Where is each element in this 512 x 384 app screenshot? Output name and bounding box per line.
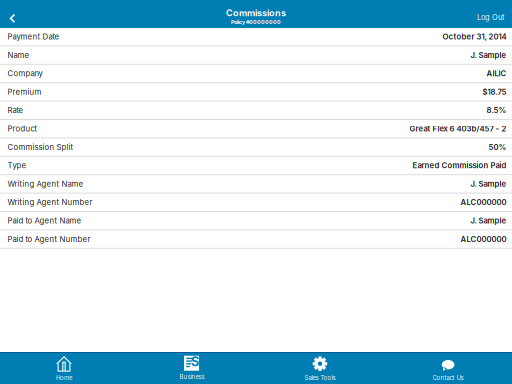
staticText: J. Sample — [470, 216, 506, 225]
staticText: Type — [7, 161, 26, 170]
staticText: October 31, 2014 — [442, 32, 506, 41]
staticText: ALC000000 — [460, 234, 506, 244]
staticText: Product — [7, 124, 37, 133]
staticText: 50% — [488, 142, 506, 152]
staticText: Premium — [7, 87, 41, 97]
staticText: S — [191, 354, 199, 369]
staticText: $18.75 — [482, 87, 506, 97]
staticText: J. Sample — [470, 179, 506, 189]
staticText: Paid to Agent Number — [7, 234, 90, 244]
staticText: Earned Commission Paid — [412, 161, 506, 170]
staticText: Paid to Agent Name — [7, 216, 81, 225]
staticText: Home — [56, 374, 72, 382]
staticText: Writing Agent Number — [7, 198, 92, 207]
staticText: Sales Tools — [304, 374, 335, 382]
staticText: AILIC — [486, 69, 506, 78]
button[interactable]: Sales Tools — [256, 352, 384, 384]
staticText: Contact Us — [432, 374, 463, 382]
staticText: Commissions — [226, 7, 286, 18]
button[interactable]: Home — [0, 352, 128, 384]
staticText: 8.5% — [486, 106, 506, 115]
button[interactable]: Contact Us — [384, 352, 512, 384]
staticText: Great Flex 6 403b/457 - 2 — [409, 124, 506, 133]
button[interactable]: Back — [0, 0, 24, 28]
staticText: Log Out — [477, 13, 504, 22]
staticText: Business — [179, 373, 204, 381]
staticText: Rate — [7, 106, 23, 115]
staticText: Commission Split — [7, 142, 73, 152]
button[interactable]: Log Out — [467, 2, 512, 26]
staticText: J. Sample — [470, 50, 506, 60]
staticText: ALC000000 — [460, 198, 506, 207]
staticText: Name — [7, 50, 29, 60]
staticText: Company — [7, 69, 42, 78]
staticText: Writing Agent Name — [7, 179, 83, 189]
staticText: Payment Date — [7, 32, 59, 41]
staticText: Policy #00000000 — [231, 19, 281, 25]
button[interactable]: S — [128, 352, 256, 384]
